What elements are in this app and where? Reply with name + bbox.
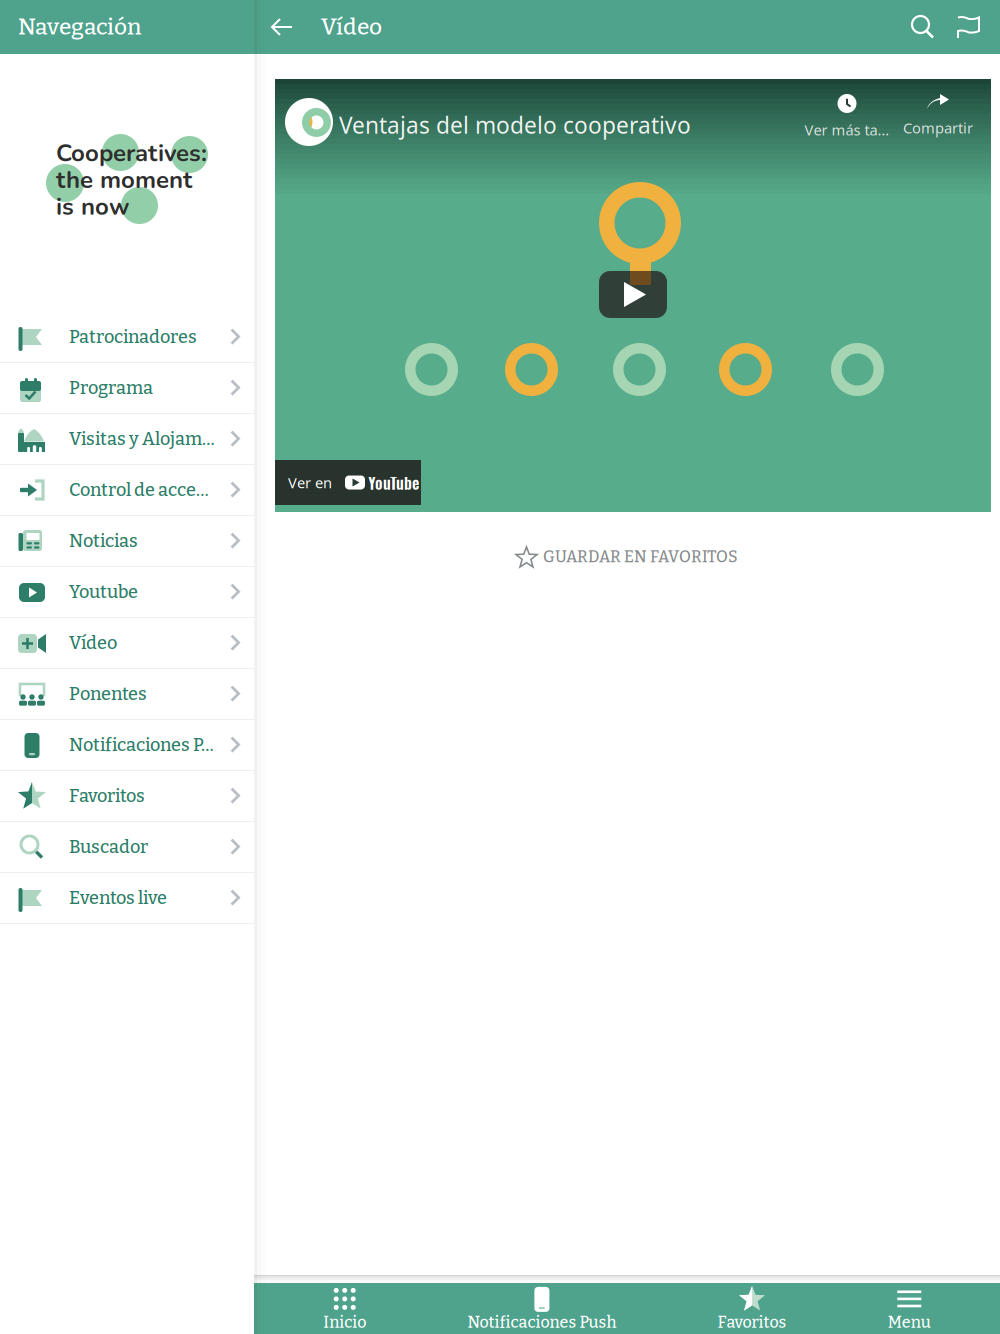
button[interactable]: Control de acce… xyxy=(0,465,254,516)
staticText: Youtube xyxy=(69,581,138,603)
staticText: Notificaciones Push xyxy=(467,1313,616,1332)
staticText: Ventajas del modelo cooperativo xyxy=(339,110,691,140)
staticText: Ver en xyxy=(288,473,332,492)
staticText: Noticias xyxy=(69,530,138,552)
staticText: Eventos live xyxy=(69,887,167,909)
staticText: Buscador xyxy=(69,836,148,858)
button[interactable]: Eventos live xyxy=(0,873,254,924)
button[interactable]: Vídeo xyxy=(0,618,254,669)
staticText: the moment xyxy=(56,164,192,196)
staticText: Vídeo xyxy=(321,13,382,41)
staticText: Navegación xyxy=(18,13,141,41)
staticText: YouTube xyxy=(368,471,419,494)
staticText: Favoritos xyxy=(69,785,145,807)
staticText: Visitas y Alojam… xyxy=(69,428,215,450)
button[interactable]: Inicio xyxy=(291,1283,398,1334)
button[interactable]: Buscador xyxy=(0,822,254,873)
staticText: is now xyxy=(56,190,129,223)
button[interactable]: Atrás xyxy=(260,0,304,54)
staticText: Patrocinadores xyxy=(69,326,197,348)
staticText: Inicio xyxy=(323,1313,366,1332)
button[interactable]: Buscar xyxy=(900,0,946,54)
button[interactable]: Menu xyxy=(856,1283,963,1334)
staticText: Ver más ta… xyxy=(804,120,889,139)
staticText: Vídeo xyxy=(69,632,117,654)
staticText: GUARDAR EN FAVORITOS xyxy=(543,547,738,567)
button[interactable]: Visitas y Alojam… xyxy=(0,414,254,465)
staticText: Menu xyxy=(888,1313,931,1332)
button[interactable]: Notificaciones Push xyxy=(435,1283,648,1334)
staticText: Compartir xyxy=(903,118,973,137)
staticText: Programa xyxy=(69,377,153,399)
staticText: Ponentes xyxy=(69,683,147,705)
button[interactable]: Notificaciones P… xyxy=(0,720,254,771)
button[interactable]: Noticias xyxy=(0,516,254,567)
button[interactable]: GUARDAR EN FAVORITOS xyxy=(254,512,1000,602)
button[interactable]: Ponentes xyxy=(0,669,254,720)
button[interactable]: Favoritos xyxy=(0,771,254,822)
button[interactable]: Patrocinadores xyxy=(0,312,254,363)
staticText: Cooperatives: xyxy=(56,137,207,170)
button[interactable]: Programa xyxy=(0,363,254,414)
button[interactable]: Eventos live xyxy=(946,0,990,54)
staticText: Favoritos xyxy=(718,1313,787,1332)
staticText: Control de acce… xyxy=(69,479,209,501)
button[interactable]: Youtube xyxy=(0,567,254,618)
button[interactable]: Favoritos xyxy=(686,1283,819,1334)
staticText: Notificaciones P… xyxy=(69,734,214,756)
